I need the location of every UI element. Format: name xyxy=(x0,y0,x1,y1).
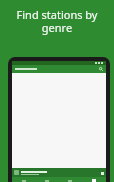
button[interactable]: Search xyxy=(98,66,104,72)
button[interactable]: Tab xyxy=(58,177,82,182)
button[interactable]: Search xyxy=(12,65,106,73)
staticText: Find stations by genre xyxy=(10,7,104,35)
button[interactable]: Play xyxy=(100,171,104,175)
button[interactable]: Play xyxy=(12,168,106,177)
button[interactable]: Tab xyxy=(35,177,58,182)
button[interactable]: Tab xyxy=(12,177,35,182)
button[interactable]: Selected tab xyxy=(82,177,106,182)
